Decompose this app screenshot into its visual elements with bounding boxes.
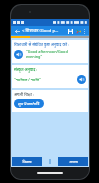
button[interactable]: संस्कृत अनुवाद : — [12, 65, 88, 88]
button[interactable]: अगली शिक्षा : — [12, 90, 88, 112]
button[interactable]: शुभ प्रभात/रात्रि — [14, 99, 44, 108]
button[interactable]: Save — [66, 27, 74, 35]
staticText: शिष्टाचारी से संबंधित कुछ अनुवाद करें : — [14, 42, 70, 47]
button[interactable]: Back — [13, 27, 21, 35]
staticText: अगला — [69, 159, 78, 164]
button[interactable]: More options — [82, 27, 87, 35]
staticText: "Good afternoon/Good — [26, 49, 68, 54]
staticText: evening" — [26, 54, 43, 59]
button[interactable]: पिछला — [12, 157, 42, 166]
button[interactable]: Share to Play — [74, 27, 82, 35]
staticText: अगली शिक्षा : — [14, 92, 34, 97]
staticText: "नमस्कार / नमस्ते" — [14, 77, 77, 82]
button[interactable]: शिष्टाचारी से संबंधित कुछ अनुवाद करें : — [12, 40, 88, 63]
button[interactable]: Play pronunciation — [14, 50, 23, 59]
staticText: पिछला — [22, 159, 32, 164]
staticText: शुभ प्रभात/रात्रि — [18, 101, 40, 106]
button[interactable]: Play pronunciation — [77, 75, 86, 84]
staticText: संस्कृत अनुवाद : — [14, 67, 38, 72]
staticText: < शिष्टाचार (Good p... — [22, 28, 66, 34]
button[interactable]: अगला — [58, 157, 88, 166]
